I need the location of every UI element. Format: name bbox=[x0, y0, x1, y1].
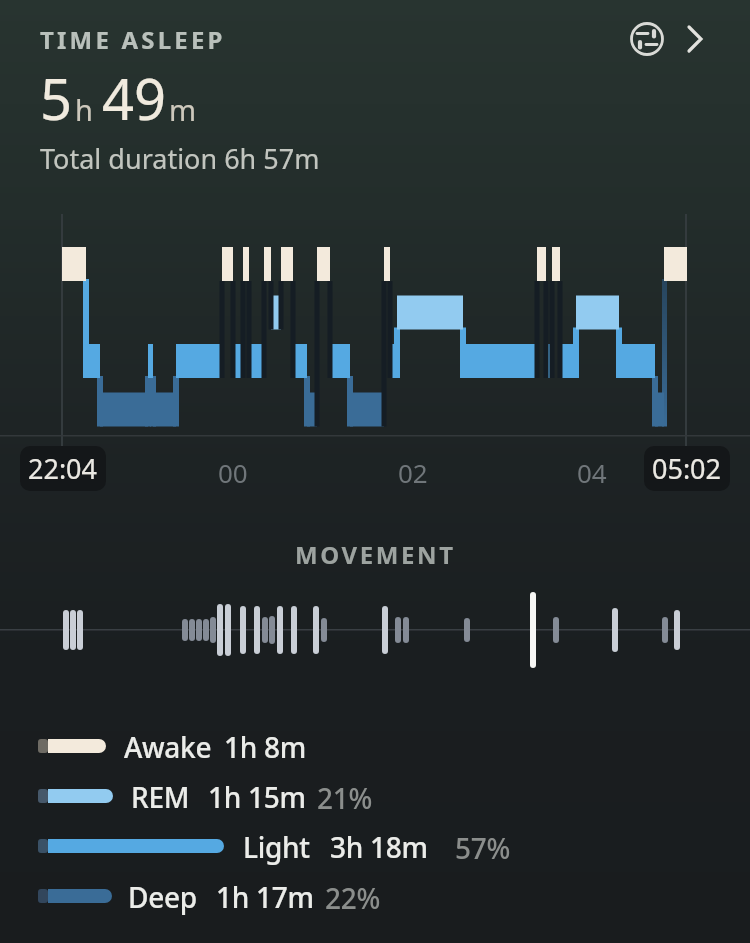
staticText: TIME ASLEEP bbox=[40, 23, 226, 56]
staticText: 1h 8m bbox=[224, 728, 306, 766]
staticText: 22% bbox=[325, 879, 380, 917]
button[interactable]: 22:04 bbox=[20, 446, 106, 491]
button[interactable] bbox=[680, 20, 712, 52]
staticText: 02 bbox=[398, 455, 428, 490]
button[interactable]: 05:02 bbox=[644, 446, 730, 491]
staticText: 21% bbox=[317, 779, 372, 817]
button[interactable]: TIME ASLEEP bbox=[0, 14, 750, 64]
staticText: 00 bbox=[218, 455, 248, 490]
staticText: REM bbox=[131, 778, 190, 816]
staticText: 49 bbox=[102, 60, 167, 136]
button[interactable] bbox=[0, 777, 750, 817]
staticText: 04 bbox=[577, 455, 607, 490]
staticText: 57% bbox=[455, 829, 510, 867]
staticText: 1h 17m bbox=[216, 878, 314, 916]
staticText: 1h 15m bbox=[208, 778, 306, 816]
staticText: 3h 18m bbox=[330, 828, 428, 866]
button[interactable] bbox=[0, 727, 750, 767]
staticText: h bbox=[75, 90, 93, 129]
button[interactable] bbox=[0, 827, 750, 867]
staticText: 05:02 bbox=[652, 450, 722, 487]
staticText: Awake bbox=[124, 728, 212, 766]
staticText: Deep bbox=[128, 878, 197, 916]
staticText: 22:04 bbox=[28, 450, 98, 487]
button[interactable] bbox=[628, 20, 666, 58]
staticText: Total duration 6h 57m bbox=[40, 140, 320, 177]
staticText: MOVEMENT bbox=[295, 538, 456, 571]
staticText: 5 bbox=[40, 60, 73, 136]
staticText: Light bbox=[243, 828, 310, 866]
button[interactable]: 5 bbox=[40, 60, 197, 136]
staticText: m bbox=[169, 90, 197, 129]
button[interactable] bbox=[0, 877, 750, 917]
